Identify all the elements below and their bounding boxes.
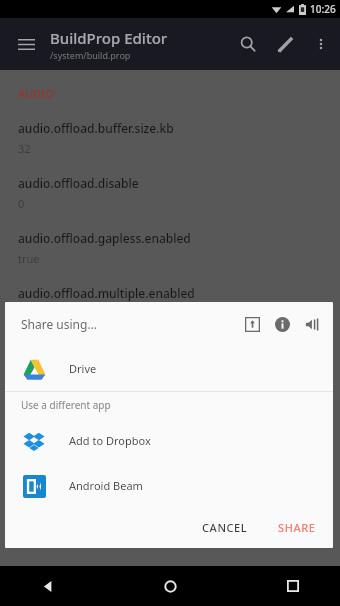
staticText: Android Beam bbox=[69, 478, 143, 493]
staticText: 0 bbox=[18, 196, 25, 211]
staticText: AUDIO bbox=[18, 86, 54, 101]
button[interactable]: Information bbox=[267, 309, 297, 339]
button[interactable]: Open navigation drawer bbox=[8, 26, 44, 62]
staticText: audio.offload.multiple.enabled bbox=[18, 285, 195, 301]
staticText: audio.offload.buffer.size.kb bbox=[18, 120, 174, 136]
button[interactable]: Add to Dropbox bbox=[5, 418, 333, 463]
button[interactable]: Home bbox=[149, 566, 191, 606]
staticText: CANCEL bbox=[202, 520, 248, 535]
button[interactable]: Drive bbox=[5, 346, 333, 391]
button[interactable]: Recent apps bbox=[272, 566, 314, 606]
staticText: SHARE bbox=[278, 520, 316, 535]
staticText: BuildProp Editor bbox=[50, 28, 168, 48]
staticText: 32 bbox=[18, 141, 31, 156]
staticText: /system/build.prop bbox=[50, 49, 131, 61]
button[interactable]: Search bbox=[230, 26, 266, 62]
button[interactable]: Open in new window bbox=[237, 309, 267, 339]
button[interactable]: Edit bbox=[266, 25, 304, 63]
staticText: false bbox=[18, 306, 43, 321]
staticText: 10:26 bbox=[310, 2, 336, 16]
button[interactable]: Android Beam bbox=[5, 463, 333, 508]
button[interactable]: Back bbox=[26, 566, 68, 606]
staticText: Add to Dropbox bbox=[69, 433, 151, 448]
button[interactable]: CANCEL bbox=[191, 513, 259, 542]
staticText: audio.offload.gapless.enabled bbox=[18, 230, 191, 246]
staticText: audio.offload.disable bbox=[18, 175, 139, 191]
staticText: Share using… bbox=[21, 316, 97, 332]
button[interactable]: SHARE bbox=[267, 513, 327, 542]
staticText: true bbox=[18, 251, 40, 266]
button[interactable]: More options bbox=[304, 27, 338, 61]
staticText: Drive bbox=[69, 361, 97, 376]
staticText: Use a different app bbox=[21, 398, 111, 412]
button[interactable]: Mute bbox=[297, 309, 327, 339]
